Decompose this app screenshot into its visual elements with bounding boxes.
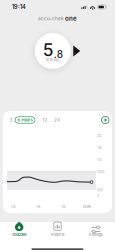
button[interactable]: Glucose — [0, 218, 38, 240]
staticText: Glucose — [12, 232, 26, 237]
button[interactable]: Settings — [77, 218, 115, 240]
staticText: 14 — [97, 157, 102, 162]
staticText: Settings — [89, 232, 103, 237]
button[interactable]: 24 — [53, 116, 61, 124]
staticText: 3 — [9, 117, 12, 123]
staticText: .8 — [54, 48, 63, 60]
staticText: mmol/L — [46, 57, 60, 62]
button[interactable]: Add event — [102, 116, 109, 124]
button[interactable]: 6 Hours — [15, 117, 35, 123]
staticText: 14 — [11, 204, 16, 209]
staticText: 12 — [42, 117, 47, 123]
staticText: 18 — [97, 145, 101, 150]
staticText: 5 — [43, 39, 54, 60]
staticText: 2 — [97, 193, 99, 198]
staticText: Reports — [50, 232, 64, 237]
staticText: 24 — [54, 117, 60, 123]
button[interactable]: Reports — [38, 218, 77, 240]
staticText: one — [65, 15, 77, 22]
staticText: 18 — [61, 204, 65, 209]
staticText: accu‑chek — [38, 16, 64, 21]
staticText: 19:14 — [12, 4, 26, 10]
button[interactable]: 12 — [41, 116, 49, 124]
staticText: 22 — [97, 133, 101, 138]
staticText: Now — [83, 204, 91, 209]
button[interactable]: 3 — [7, 116, 15, 124]
staticText: 6 Hours — [17, 118, 32, 122]
staticText: 3.9 — [97, 187, 102, 192]
staticText: 16 — [36, 204, 40, 209]
staticText: 10.0 — [97, 169, 105, 174]
